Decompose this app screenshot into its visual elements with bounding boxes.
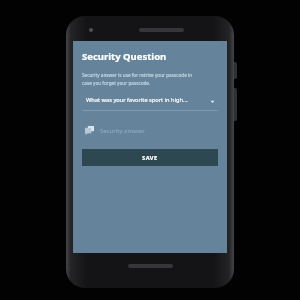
button[interactable]: Security answer — [82, 124, 218, 137]
staticText: Security Question — [82, 50, 167, 63]
staticText: case you forget your passcode. — [82, 80, 151, 86]
other: Security answer — [85, 126, 94, 135]
staticText: SAVE — [142, 154, 158, 162]
staticText: Security answer — [100, 127, 145, 135]
button[interactable]: SAVE — [82, 149, 218, 166]
button[interactable]: What was your favorite sport in high... — [82, 96, 218, 111]
staticText: Security answer is use for retrive your … — [82, 72, 193, 78]
staticText: What was your favorite sport in high... — [86, 96, 188, 104]
